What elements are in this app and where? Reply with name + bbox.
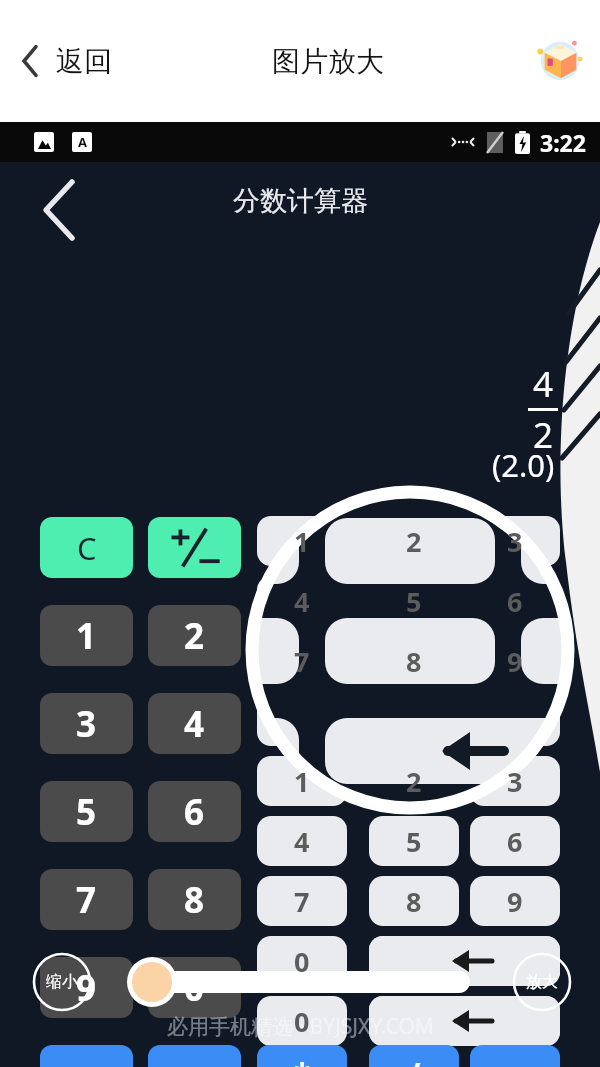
button[interactable]: 返回 xyxy=(8,29,124,93)
button[interactable]: - xyxy=(148,1045,241,1067)
button[interactable]: 4 xyxy=(257,816,347,866)
staticText: 1 xyxy=(294,763,310,800)
staticText: 7 xyxy=(294,883,310,920)
button[interactable]: / xyxy=(369,1045,459,1067)
staticText: 0 xyxy=(294,1003,310,1040)
button[interactable]: 3 xyxy=(40,693,133,754)
button[interactable]: 6 xyxy=(148,781,241,842)
staticText: 1 xyxy=(76,612,97,660)
staticText: 5 xyxy=(406,583,422,620)
staticText: * xyxy=(294,1053,311,1067)
button[interactable] xyxy=(257,696,347,746)
button[interactable]: 3 xyxy=(470,756,560,806)
staticText: 6 xyxy=(507,823,523,860)
staticText: 6 xyxy=(507,583,523,620)
button[interactable]: 8 xyxy=(369,636,459,686)
button[interactable]: 1 xyxy=(257,756,347,806)
staticText: 3 xyxy=(507,763,523,800)
button[interactable]: * xyxy=(257,1045,347,1067)
staticText: 4 xyxy=(184,700,205,748)
staticText: 2 xyxy=(533,411,554,459)
button[interactable]: 2 xyxy=(148,605,241,666)
button[interactable] xyxy=(369,996,459,1046)
staticText: 8 xyxy=(184,876,205,924)
button[interactable]: 1 xyxy=(257,516,347,566)
staticText: 6 xyxy=(184,788,205,836)
staticText: 2 xyxy=(406,523,422,560)
button[interactable]: 9 xyxy=(470,876,560,926)
staticText: 2 xyxy=(184,612,205,660)
button[interactable] xyxy=(148,517,241,578)
staticText: 4 xyxy=(294,823,310,860)
button[interactable]: 8 xyxy=(369,876,459,926)
button[interactable]: C xyxy=(40,517,133,578)
staticText: 9 xyxy=(76,964,97,1012)
button[interactable]: 0 xyxy=(257,936,347,986)
button[interactable] xyxy=(369,936,459,986)
staticText: 9 xyxy=(507,643,523,680)
staticText: / xyxy=(408,1053,421,1067)
staticText: 5 xyxy=(406,823,422,860)
button[interactable]: + xyxy=(40,1045,133,1067)
button[interactable]: 9 xyxy=(40,957,133,1018)
staticText: 3:22 xyxy=(540,127,586,158)
button[interactable] xyxy=(470,696,560,746)
staticText: 0 xyxy=(294,943,310,980)
staticText: 4 xyxy=(294,583,310,620)
button[interactable]: 3 xyxy=(470,516,560,566)
button[interactable]: 5 xyxy=(369,576,459,626)
button[interactable]: 2 xyxy=(369,516,459,566)
staticText: 7 xyxy=(294,643,310,680)
staticText: 分数计算器 xyxy=(233,184,368,218)
staticText: 必用手机精选 · BYJSJXY.COM xyxy=(167,1012,434,1041)
button[interactable] xyxy=(369,696,459,746)
staticText: 0 xyxy=(184,964,205,1012)
button[interactable]: 缩小 xyxy=(34,954,90,1010)
staticText: 8 xyxy=(406,883,422,920)
button[interactable]: 4 xyxy=(148,693,241,754)
button[interactable]: 7 xyxy=(257,876,347,926)
staticText: 返回 xyxy=(56,44,112,79)
staticText: 3 xyxy=(76,700,97,748)
staticText: 8 xyxy=(406,643,422,680)
button[interactable]: 5 xyxy=(40,781,133,842)
button[interactable]: 6 xyxy=(470,576,560,626)
button[interactable] xyxy=(470,996,560,1046)
staticText: (2.0) xyxy=(492,444,555,486)
staticText: 放大 xyxy=(526,972,558,992)
button[interactable]: 4 xyxy=(257,576,347,626)
button[interactable]: 0 xyxy=(257,996,347,1046)
button[interactable]: 5 xyxy=(369,816,459,866)
staticText: 图片放大 xyxy=(272,44,384,79)
staticText: 9 xyxy=(507,883,523,920)
button[interactable]: 1 xyxy=(40,605,133,666)
button[interactable]: 返回 xyxy=(28,172,90,234)
staticText: C xyxy=(77,527,97,569)
staticText: 2 xyxy=(406,763,422,800)
staticText: 3 xyxy=(507,523,523,560)
button[interactable]: 9 xyxy=(470,636,560,686)
button[interactable]: 2 xyxy=(369,756,459,806)
button[interactable] xyxy=(470,936,560,986)
button[interactable]: = xyxy=(470,1045,560,1067)
button[interactable]: 7 xyxy=(40,869,133,930)
staticText: 4 xyxy=(533,360,554,408)
button[interactable]: 0 xyxy=(148,957,241,1018)
staticText: 5 xyxy=(76,788,97,836)
button[interactable]: 7 xyxy=(257,636,347,686)
staticText: 7 xyxy=(76,876,97,924)
button[interactable]: 放大 xyxy=(514,954,570,1010)
staticText: A xyxy=(78,133,87,151)
button[interactable]: 活动礼盒 xyxy=(532,33,588,89)
button[interactable]: 6 xyxy=(470,816,560,866)
staticText: 缩小 xyxy=(46,972,78,992)
staticText: 1 xyxy=(294,523,310,560)
button[interactable]: 8 xyxy=(148,869,241,930)
